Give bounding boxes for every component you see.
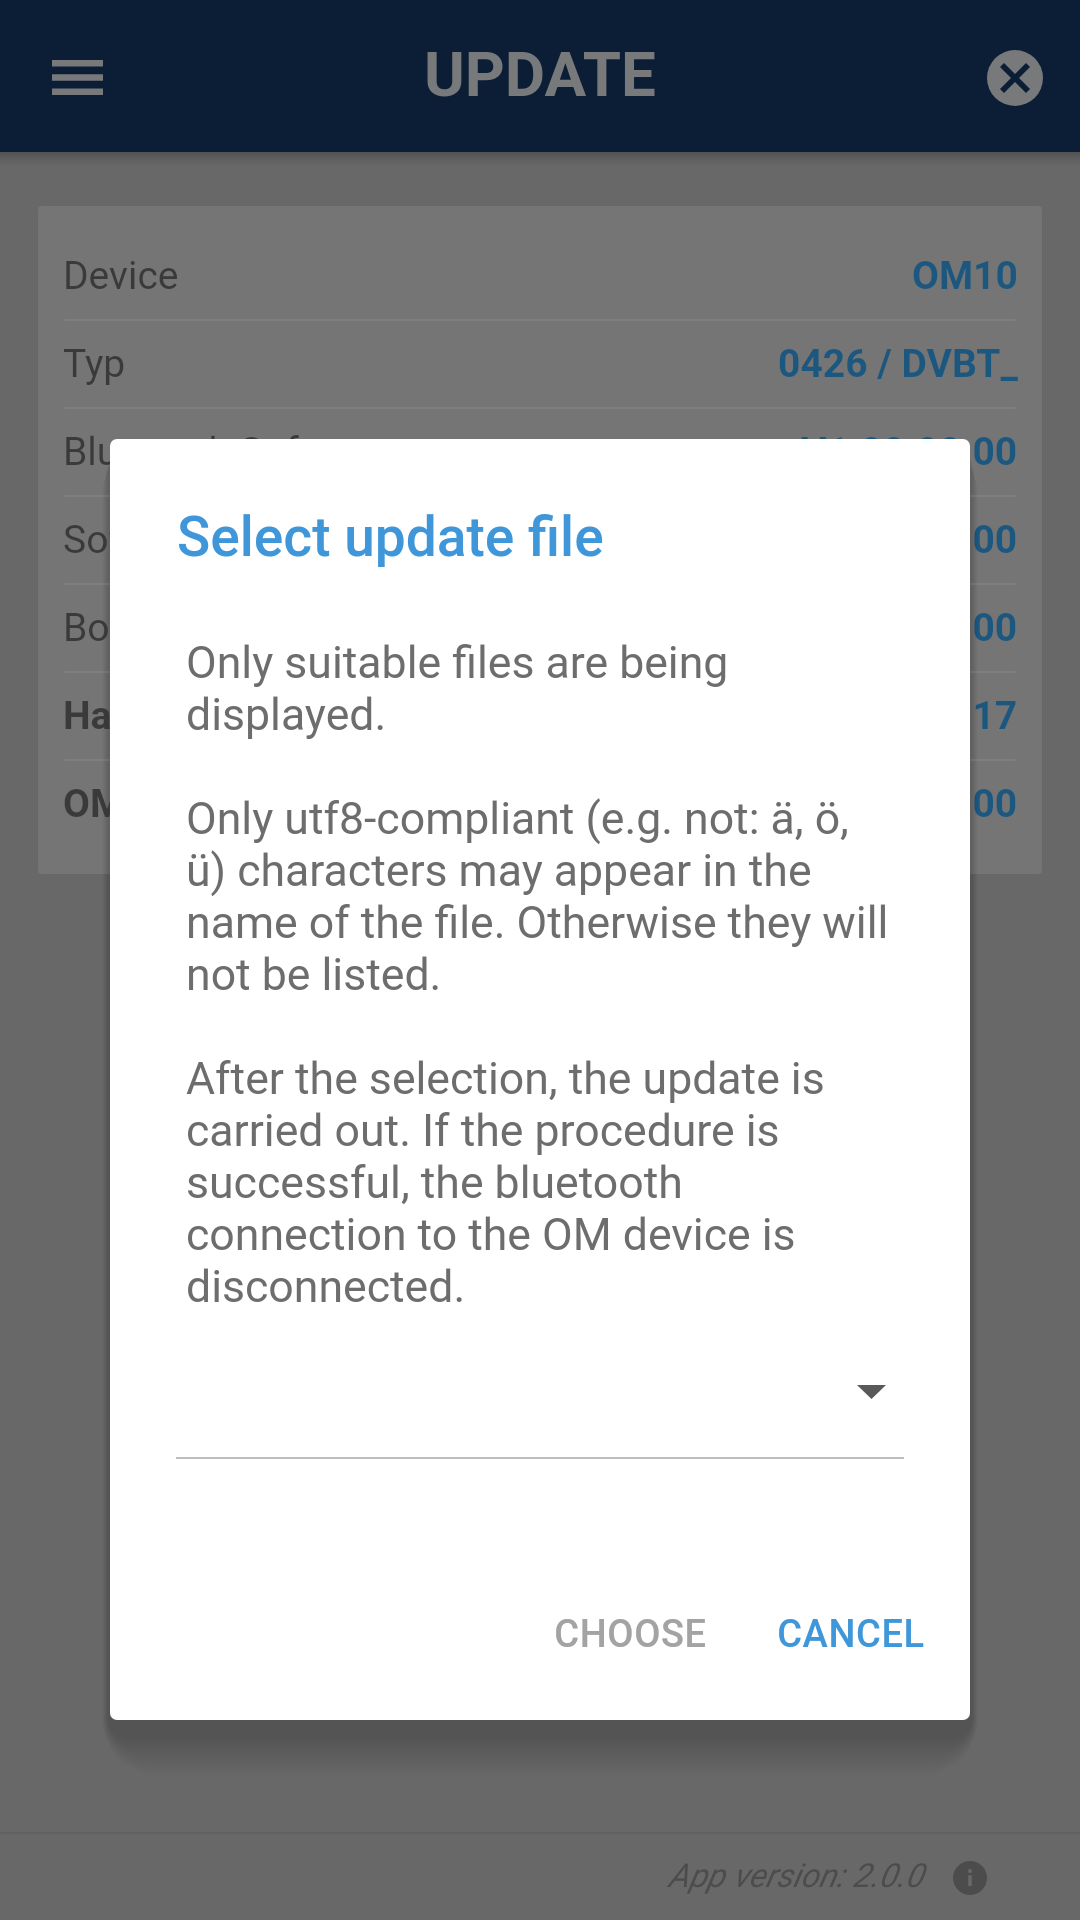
staticText: V1.00.00.00 — [801, 517, 1018, 563]
staticText: V1.00.00.17 — [801, 693, 1018, 739]
staticText: Select update file — [177, 505, 604, 569]
staticText: 0426 / DVBT_ — [778, 341, 1018, 387]
button[interactable]: Hardware — [38, 673, 1042, 759]
button[interactable]: Typ — [38, 321, 1042, 407]
staticText: Only suitable files are being displayed.… — [186, 637, 893, 1313]
staticText: V1.00.00.00 — [801, 605, 1018, 651]
button[interactable]: Open navigation menu — [31, 31, 123, 123]
staticText: V1.00.00.00 — [801, 781, 1018, 827]
staticText: V1.00.00.00 — [801, 429, 1018, 475]
staticText: OM Software — [63, 781, 292, 827]
button[interactable]: Bootloader — [38, 585, 1042, 671]
staticText: OM10 — [912, 253, 1018, 299]
button[interactable]: Software — [38, 497, 1042, 583]
button[interactable]: Close — [969, 32, 1061, 124]
staticText: Bootloader — [63, 605, 254, 651]
button[interactable]: CHOOSE — [532, 1590, 729, 1679]
button[interactable]: App version: 2.0.0 — [668, 1858, 1080, 1897]
staticText: Hardware — [63, 693, 232, 739]
staticText: App version: 2.0.0 — [668, 1856, 924, 1895]
button[interactable]: CANCEL — [755, 1590, 947, 1679]
staticText: Device — [63, 253, 179, 299]
button[interactable]: Device — [38, 232, 1042, 319]
staticText: CANCEL — [777, 1612, 925, 1657]
staticText: CHOOSE — [554, 1612, 707, 1657]
staticText: Typ — [63, 341, 126, 387]
staticText: Software — [63, 517, 219, 563]
staticText: UPDATE — [424, 38, 656, 111]
button[interactable]: Choose file — [110, 1339, 970, 1459]
button[interactable]: Bluetooth Software — [38, 409, 1042, 495]
staticText: Bluetooth Software — [63, 429, 396, 475]
button[interactable]: OM Software — [38, 761, 1042, 847]
